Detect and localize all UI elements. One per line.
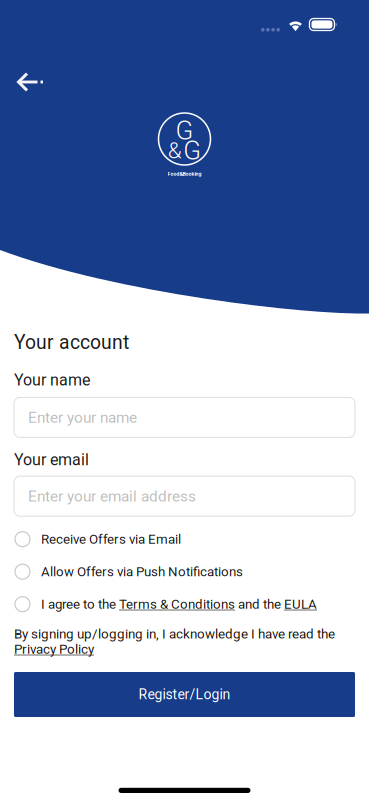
staticText: By signing up/logging in, I acknowledge … bbox=[14, 626, 335, 657]
button[interactable]: Back bbox=[0, 64, 45, 100]
staticText: Register/Login bbox=[138, 686, 230, 703]
button[interactable]: I agree to the Terms & Conditions and th… bbox=[0, 588, 369, 620]
staticText: & bbox=[168, 137, 182, 164]
staticText: Receive Offers via Email bbox=[41, 531, 181, 547]
staticText: Allow Offers via Push Notifications bbox=[41, 564, 243, 579]
staticText: G bbox=[175, 115, 193, 146]
button[interactable]: Register/Login bbox=[0, 672, 369, 717]
staticText: Food&Booking bbox=[167, 171, 201, 177]
staticText: Your email bbox=[14, 450, 89, 469]
staticText: G bbox=[183, 135, 201, 166]
button[interactable]: Allow Offers via Push Notifications bbox=[0, 556, 369, 588]
staticText: Enter your email address bbox=[28, 487, 196, 505]
staticText: I agree to the Terms & Conditions and th… bbox=[41, 596, 317, 612]
button[interactable]: Receive Offers via Email bbox=[0, 523, 369, 555]
staticText: Enter your name bbox=[28, 408, 137, 426]
staticText: Your name bbox=[14, 371, 90, 389]
staticText: Your account bbox=[14, 331, 129, 354]
